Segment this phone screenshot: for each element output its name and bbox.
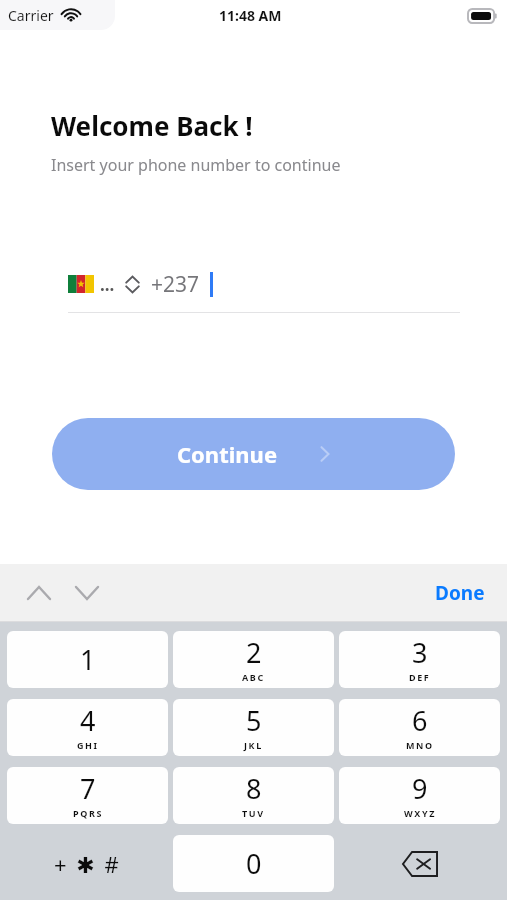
button[interactable]: 5 — [173, 699, 334, 756]
button[interactable]: 9 — [339, 767, 500, 824]
staticText: MNO — [406, 739, 434, 751]
staticText: PQRS — [73, 807, 103, 819]
button[interactable]: 8 — [173, 767, 334, 824]
staticText: 11:48 AM — [219, 6, 282, 25]
button[interactable]: Done — [427, 574, 493, 612]
staticText: 9 — [412, 770, 428, 807]
button[interactable]: 4 — [7, 699, 168, 756]
button[interactable]: Next field — [70, 578, 104, 608]
staticText: WXYZ — [404, 807, 436, 819]
staticText: 5 — [246, 702, 262, 739]
staticText: TUV — [242, 807, 265, 819]
staticText: Carrier — [8, 6, 54, 25]
staticText: 6 — [412, 702, 428, 739]
staticText: 2 — [246, 634, 262, 671]
staticText: 3 — [412, 634, 428, 671]
staticText: + ✱ # — [54, 849, 121, 879]
button[interactable]: Delete — [339, 835, 500, 892]
button[interactable]: Previous field — [22, 578, 56, 608]
staticText: 1 — [80, 641, 96, 678]
button[interactable]: 6 — [339, 699, 500, 756]
staticText: ... — [100, 273, 115, 296]
staticText: Welcome Back ! — [51, 108, 253, 143]
button[interactable]: 7 — [7, 767, 168, 824]
staticText: Done — [435, 580, 485, 606]
staticText: GHI — [77, 739, 99, 751]
staticText: 8 — [246, 770, 262, 807]
button[interactable]: 0 — [173, 835, 334, 892]
staticText: Insert your phone number to continue — [51, 154, 341, 176]
button[interactable]: 1 — [7, 631, 168, 688]
staticText: +237 — [151, 270, 200, 299]
staticText: 0 — [246, 845, 262, 882]
staticText: 7 — [80, 770, 96, 807]
staticText: ABC — [242, 671, 265, 683]
button[interactable]: Continue — [52, 418, 455, 490]
staticText: JKL — [244, 739, 263, 751]
button[interactable]: 2 — [173, 631, 334, 688]
staticText: Continue — [177, 439, 278, 469]
button[interactable]: Plus star hash — [7, 835, 168, 892]
button[interactable]: ... — [68, 262, 213, 306]
staticText: 4 — [80, 702, 96, 739]
button[interactable]: 3 — [339, 631, 500, 688]
staticText: DEF — [409, 671, 431, 683]
